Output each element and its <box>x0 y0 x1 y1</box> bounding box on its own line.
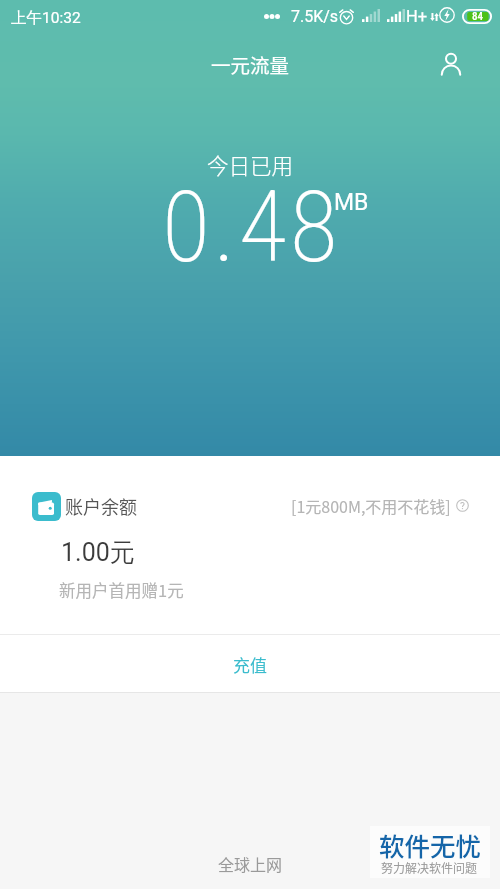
staticText: 充值 <box>233 652 267 677</box>
staticText: MB <box>334 189 369 216</box>
staticText: 努力解决软件问题 <box>381 859 478 876</box>
staticText: H+ <box>406 7 428 26</box>
staticText: 软件无忧 <box>379 826 482 863</box>
staticText: 一元流量 <box>0 50 500 78</box>
staticText: 全球上网 <box>218 852 283 875</box>
button[interactable]: 账户 <box>429 42 473 86</box>
other: 帮助 <box>456 499 469 512</box>
staticText: 7.5K/s <box>291 7 339 26</box>
staticText: [1元800M,不用不花钱] <box>291 494 451 517</box>
button[interactable]: [1元800M,不用不花钱] <box>291 494 469 517</box>
staticText: 新用户首用赠1元 <box>59 578 184 602</box>
staticText: 0.48 <box>162 169 341 285</box>
staticText: 上午10:32 <box>11 8 81 28</box>
button[interactable]: 全球上网 <box>0 837 500 889</box>
staticText: 账户余额 <box>65 493 137 519</box>
staticText: 今日已用 <box>0 149 500 180</box>
staticText: 84 <box>472 10 483 23</box>
button[interactable]: 充值 <box>0 635 500 693</box>
staticText: 1.00元 <box>61 537 135 568</box>
